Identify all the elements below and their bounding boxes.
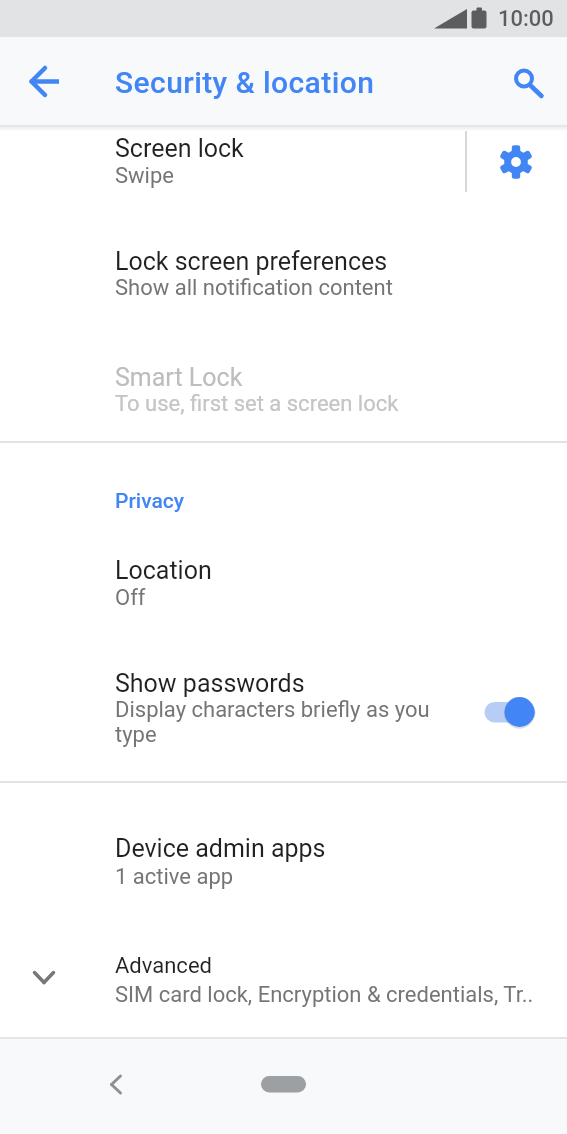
button[interactable] (0, 925, 567, 1035)
button[interactable] (0, 806, 567, 906)
button[interactable] (258, 1058, 310, 1110)
staticText: Security & location (115, 65, 375, 100)
staticText: 1 active app (115, 864, 234, 890)
staticText: type (115, 722, 157, 748)
staticText: Screen lock (115, 134, 244, 163)
button[interactable] (0, 532, 567, 632)
staticText: Device admin apps (115, 834, 326, 863)
button[interactable] (0, 228, 567, 328)
staticText: Location (115, 556, 212, 585)
button[interactable] (90, 1058, 142, 1110)
staticText: Advanced (115, 953, 212, 979)
staticText: Swipe (115, 163, 174, 189)
staticText: Display characters briefly as you (115, 697, 430, 723)
staticText: To use, first set a screen lock (115, 391, 399, 417)
staticText: SIM card lock, Encryption & credentials,… (115, 982, 534, 1008)
staticText: Lock screen preferences (115, 247, 388, 276)
staticText: Privacy (115, 489, 185, 514)
button[interactable] (0, 650, 567, 770)
button[interactable] (0, 127, 466, 222)
button[interactable] (480, 127, 552, 199)
staticText: Smart Lock (115, 363, 243, 392)
staticText: 10:00 (498, 6, 554, 32)
staticText: Off (115, 585, 146, 611)
staticText: Show passwords (115, 669, 305, 698)
button[interactable] (0, 340, 567, 440)
staticText: Show all notification content (115, 275, 393, 301)
